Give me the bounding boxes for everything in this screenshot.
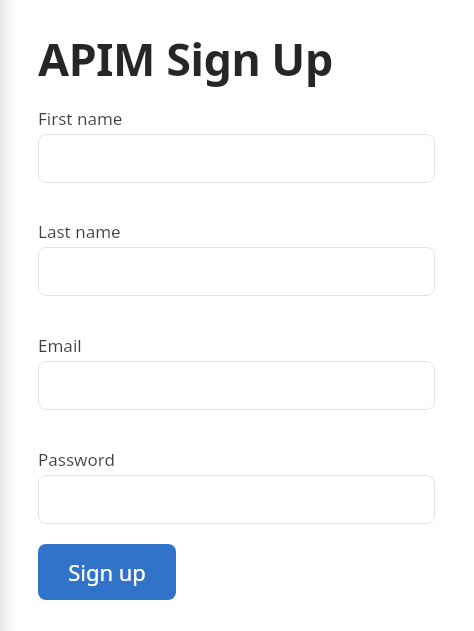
button[interactable] xyxy=(38,475,435,524)
button[interactable] xyxy=(38,247,435,296)
staticText: APIM Sign Up xyxy=(38,28,333,89)
button[interactable] xyxy=(38,134,435,183)
button[interactable]: Sign up xyxy=(38,544,176,600)
staticText: Last name xyxy=(38,220,121,243)
staticText: Sign up xyxy=(68,557,146,587)
staticText: First name xyxy=(38,107,123,130)
button[interactable] xyxy=(38,361,435,410)
staticText: Email xyxy=(38,334,82,357)
staticText: Password xyxy=(38,448,115,471)
